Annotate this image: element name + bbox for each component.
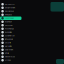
staticText: Retro notes xyxy=(5,24,13,26)
staticText: Security xyxy=(5,42,11,44)
button[interactable]: Infra update xyxy=(0,37,21,41)
button[interactable]: Roadmap Q3 xyxy=(0,27,21,30)
button[interactable]: Customer call xyxy=(0,34,21,37)
staticText: Marketing xyxy=(5,45,12,47)
button[interactable]: Bug triage xyxy=(0,20,21,23)
button[interactable]: Budget talk xyxy=(0,30,21,34)
button[interactable]: Security xyxy=(0,41,21,44)
staticText: Archive xyxy=(5,59,11,61)
staticText: Weekly recap xyxy=(5,56,15,58)
staticText: Bug triage xyxy=(5,21,12,23)
staticText: Infra update xyxy=(5,38,13,40)
button[interactable]: Hiring loop xyxy=(0,13,21,16)
staticText: Ops standup xyxy=(5,10,14,12)
button[interactable]: Morning sync xyxy=(0,2,21,6)
staticText: Launch plan xyxy=(5,17,14,19)
staticText: Offsite xyxy=(5,52,9,54)
button[interactable]: Design review xyxy=(0,6,21,9)
button[interactable]: Launch plan xyxy=(0,16,21,20)
button[interactable]: Ops standup xyxy=(0,9,21,13)
button[interactable]: Weekly recap xyxy=(0,55,21,58)
staticText: Morning sync xyxy=(5,3,15,5)
button[interactable]: Data review xyxy=(0,48,21,51)
staticText: Design review xyxy=(5,7,15,9)
staticText: Data review xyxy=(5,49,13,51)
button[interactable]: Offsite xyxy=(0,51,21,55)
staticText: Roadmap Q3 xyxy=(5,28,14,30)
button[interactable]: Marketing xyxy=(0,44,21,48)
button[interactable]: Retro notes xyxy=(0,23,21,27)
staticText: Customer call xyxy=(5,35,14,37)
button[interactable]: Archive xyxy=(0,58,21,62)
staticText: Hiring loop xyxy=(5,14,12,16)
staticText: Budget talk xyxy=(5,31,12,33)
